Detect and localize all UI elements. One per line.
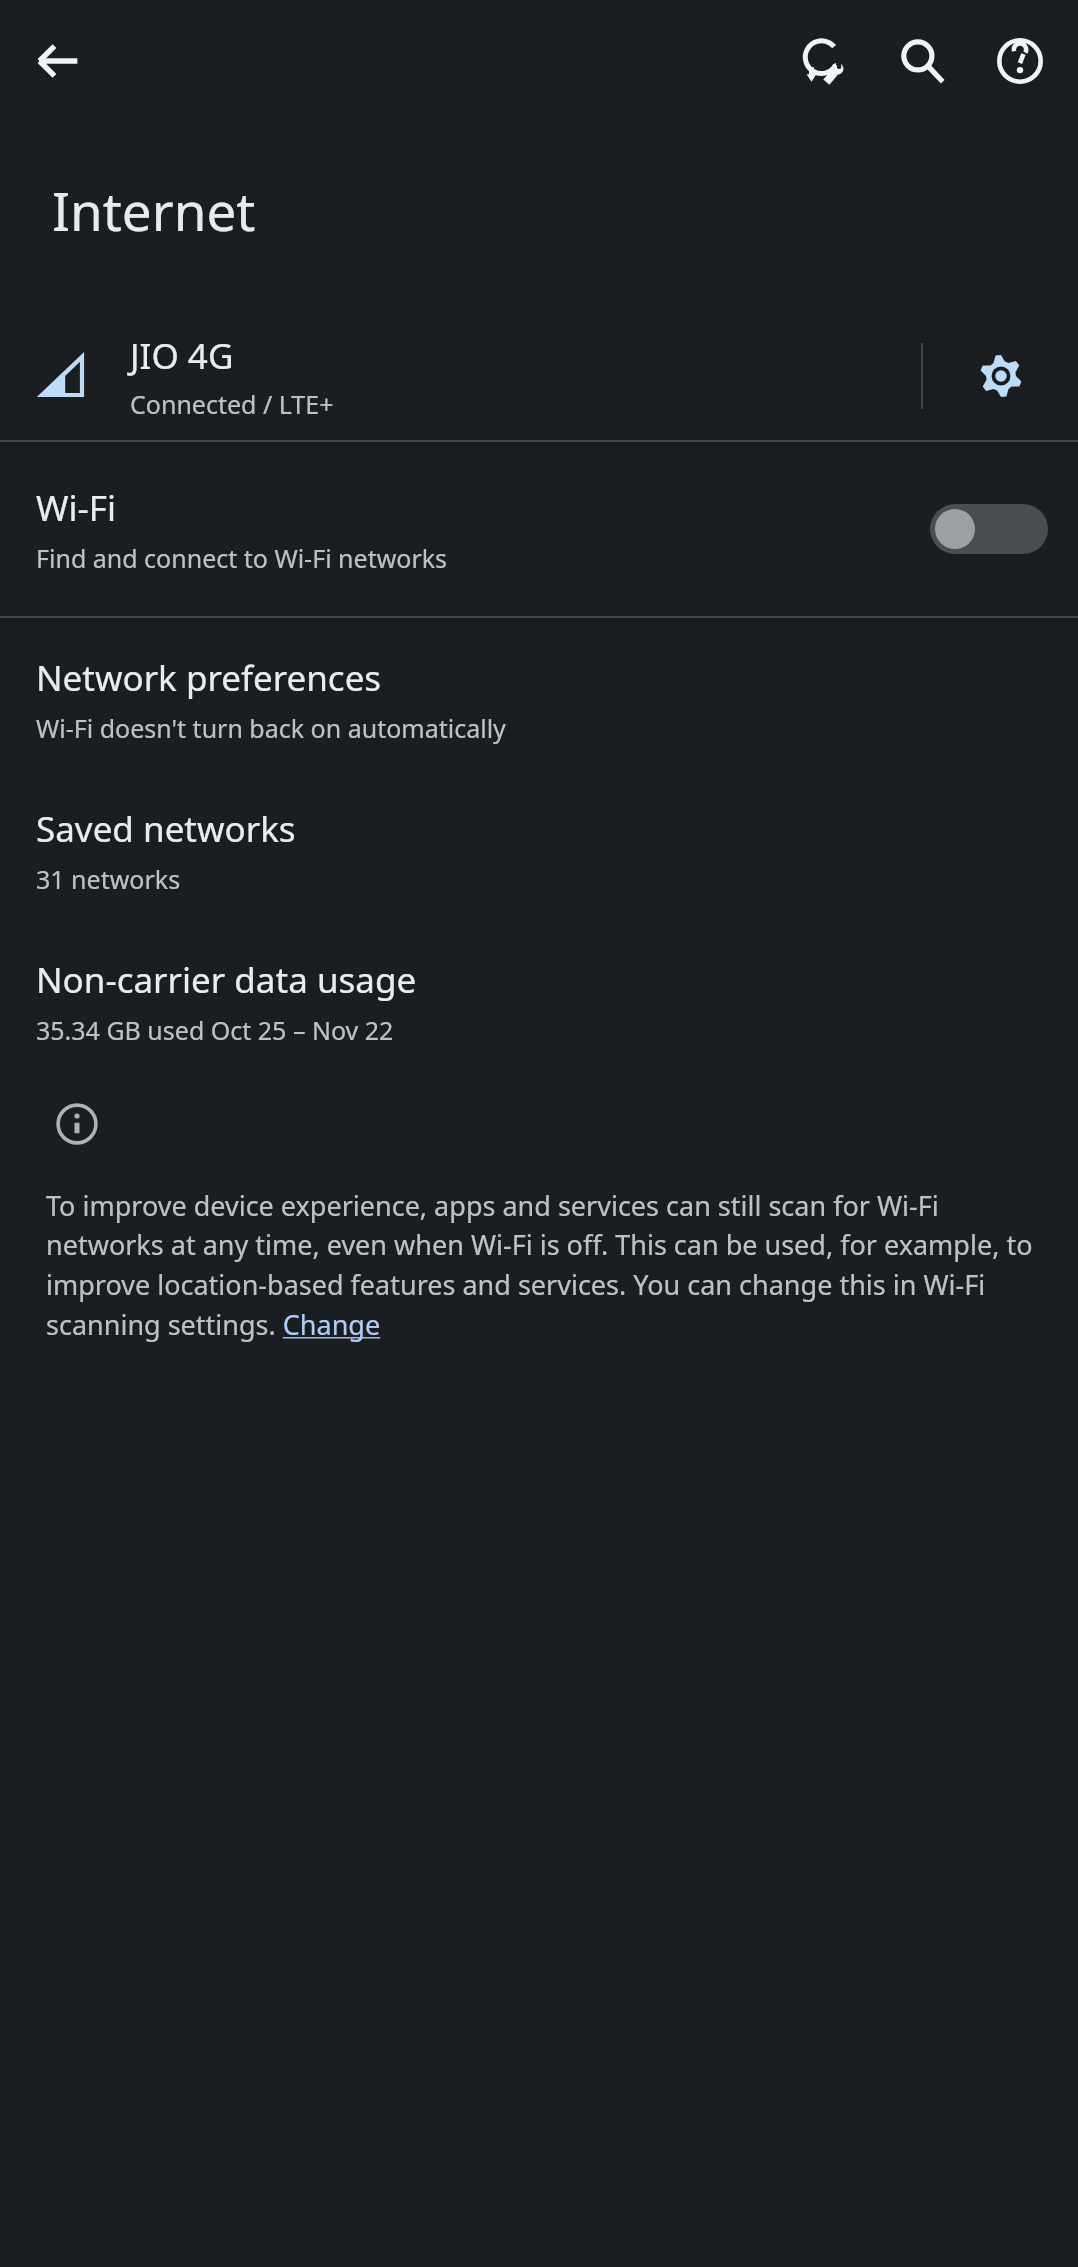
button[interactable]: Reset network settings (776, 13, 872, 109)
staticText: 31 networks (36, 862, 181, 896)
staticText: To improve device experience, apps and s… (46, 1187, 1042, 1343)
button[interactable]: Non-carrier data usage (0, 926, 1078, 1077)
button[interactable]: Search (874, 13, 970, 109)
staticText: Wi-Fi (36, 484, 117, 532)
button[interactable]: Saved networks (0, 775, 1078, 926)
button[interactable]: Back (10, 13, 106, 109)
staticText: JIO 4G (130, 332, 234, 380)
staticText: Non-carrier data usage (36, 956, 417, 1004)
button[interactable]: Wi-Fi (0, 442, 1078, 616)
button[interactable]: JIO 4G (0, 312, 921, 440)
staticText: Connected / LTE+ (130, 387, 334, 421)
staticText: Internet (52, 174, 256, 246)
button[interactable]: Network preferences (0, 618, 1078, 775)
staticText: Network preferences (36, 654, 382, 702)
staticText: Saved networks (36, 805, 296, 853)
staticText: 35.34 GB used Oct 25 – Nov 22 (36, 1013, 394, 1047)
button[interactable]: Wi-Fi toggle (930, 504, 1048, 554)
button[interactable]: Carrier settings (923, 312, 1078, 440)
staticText: Wi-Fi doesn't turn back on automatically (36, 711, 506, 745)
staticText: Find and connect to Wi-Fi networks (36, 541, 448, 575)
button[interactable]: Help (972, 13, 1068, 109)
